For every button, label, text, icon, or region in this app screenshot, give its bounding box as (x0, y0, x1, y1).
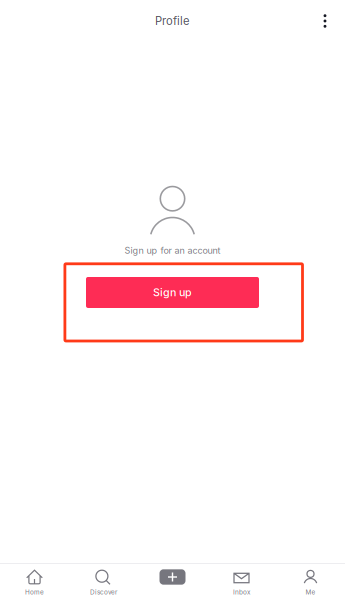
staticText: Sign up (153, 286, 192, 299)
button[interactable]: Me (276, 564, 345, 600)
staticText: Me (305, 588, 315, 596)
button[interactable]: Home (0, 564, 69, 600)
staticText: Inbox (233, 588, 250, 596)
button[interactable]: Discover (69, 564, 138, 600)
button[interactable]: Sign up (86, 277, 259, 308)
button[interactable]: Inbox (207, 564, 276, 600)
button[interactable]: Create (138, 564, 207, 600)
staticText: Discover (90, 588, 117, 596)
staticText: Home (25, 588, 44, 596)
staticText: Sign up for an account (124, 245, 220, 256)
staticText: Profile (155, 14, 190, 28)
button[interactable]: More options (305, 1, 345, 41)
